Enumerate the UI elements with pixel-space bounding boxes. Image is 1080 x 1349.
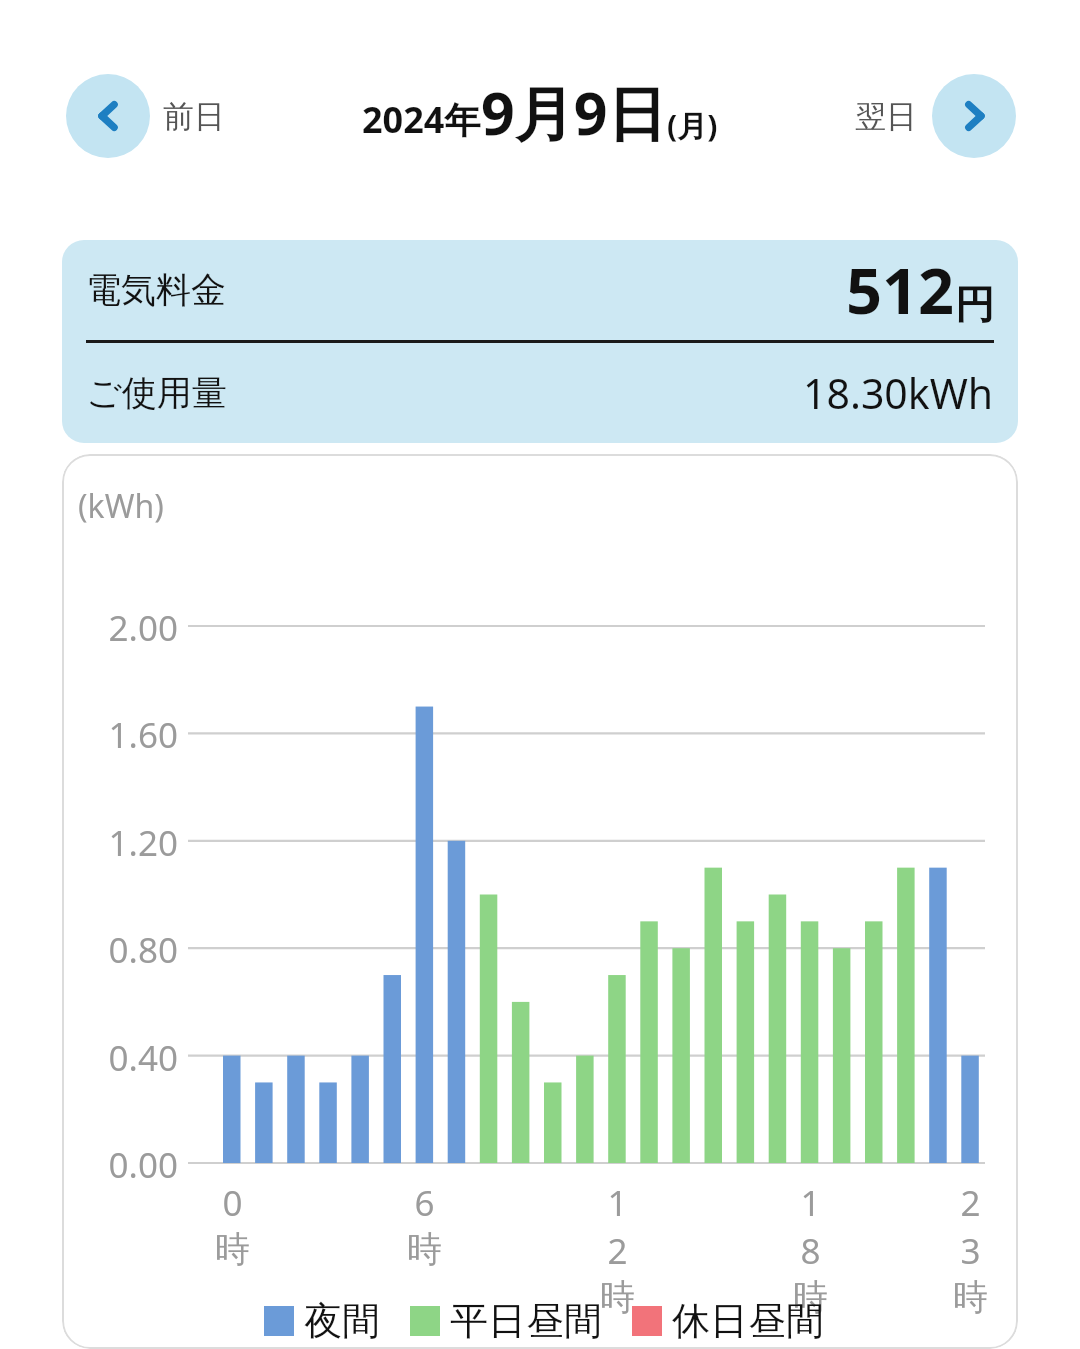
staticText: 時 <box>215 1227 250 1271</box>
staticText: 2 <box>960 1179 981 1227</box>
staticText: 9月9日 <box>481 72 667 153</box>
staticText: 2 <box>607 1227 628 1275</box>
staticText: 前日 <box>163 97 225 136</box>
staticText: 1.20 <box>70 819 178 867</box>
staticText: 0.80 <box>70 926 178 974</box>
staticText: 6 <box>414 1179 435 1227</box>
staticText: 0.40 <box>70 1034 178 1082</box>
staticText: 休日昼間 <box>672 1297 824 1345</box>
staticText: 時 <box>953 1275 988 1319</box>
staticText: 2024年 <box>362 95 481 144</box>
staticText: 1 <box>800 1179 821 1227</box>
staticText: 3 <box>960 1227 981 1275</box>
staticText: 18.30kWh <box>803 365 994 421</box>
staticText: 時 <box>600 1275 635 1319</box>
staticText: 平日昼間 <box>450 1297 602 1345</box>
staticText: 時 <box>407 1227 442 1271</box>
staticText: 1.60 <box>70 711 178 759</box>
staticText: ご使用量 <box>86 371 227 415</box>
button[interactable]: 電気料金 <box>62 240 1018 443</box>
staticText: 0 <box>222 1179 243 1227</box>
staticText: 夜間 <box>304 1297 380 1345</box>
staticText: 翌日 <box>855 97 917 136</box>
staticText: 1 <box>607 1179 628 1227</box>
staticText: 円 <box>955 280 994 329</box>
staticText: 0.00 <box>70 1141 178 1189</box>
staticText: 8 <box>800 1227 821 1275</box>
staticText: 時 <box>793 1275 828 1319</box>
staticText: 512 <box>846 247 955 333</box>
staticText: (月) <box>667 105 718 146</box>
staticText: 電気料金 <box>86 268 226 312</box>
button[interactable]: Next day <box>932 74 1016 158</box>
staticText: (kWh) <box>78 484 164 528</box>
staticText: 2.00 <box>70 604 178 652</box>
button[interactable]: Previous day <box>66 74 150 158</box>
